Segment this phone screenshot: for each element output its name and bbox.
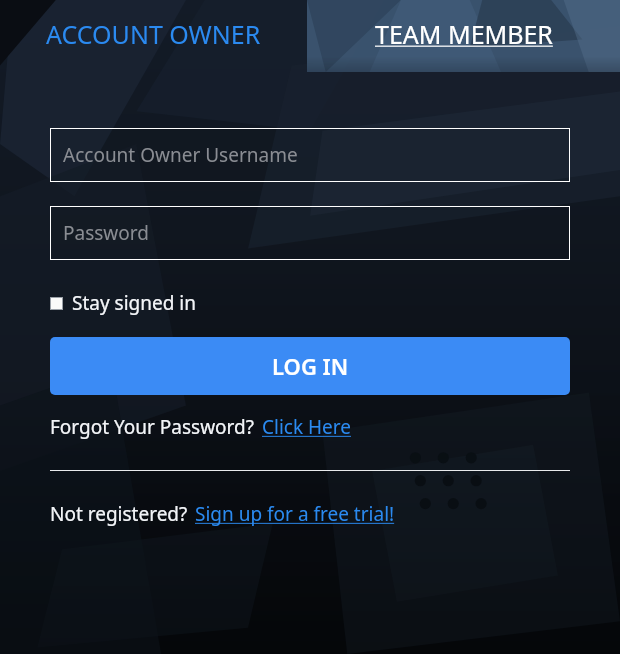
staticText: Stay signed in — [72, 290, 196, 316]
button[interactable]: Sign up for a free trial! — [195, 501, 395, 527]
staticText: Not registered? — [50, 501, 188, 527]
button[interactable]: ACCOUNT OWNER — [0, 0, 307, 72]
staticText: Password — [63, 220, 149, 246]
button[interactable]: TEAM MEMBER — [307, 0, 620, 72]
button[interactable]: Click Here — [262, 414, 351, 440]
staticText: Forgot Your Password? — [50, 414, 255, 440]
button[interactable]: Account Owner Username — [50, 128, 570, 182]
staticText: Sign up for a free trial! — [195, 501, 395, 527]
button[interactable]: Password — [50, 206, 570, 260]
staticText: Account Owner Username — [63, 142, 298, 168]
staticText: LOG IN — [272, 351, 349, 381]
button[interactable]: LOG IN — [50, 337, 570, 395]
staticText: Click Here — [262, 414, 351, 440]
staticText: TEAM MEMBER — [375, 17, 553, 51]
staticText: ACCOUNT OWNER — [46, 17, 261, 51]
button[interactable]: Stay signed in — [50, 288, 196, 318]
